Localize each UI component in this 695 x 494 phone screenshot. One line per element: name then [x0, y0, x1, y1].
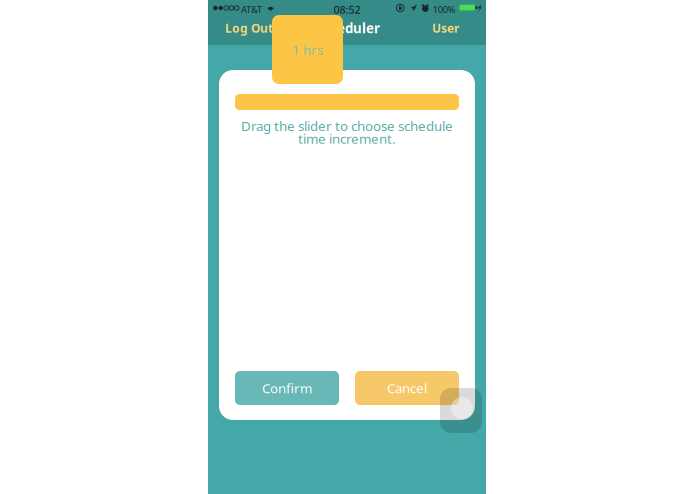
button[interactable]: Log Out — [219, 17, 279, 39]
staticText: Confirm — [262, 379, 312, 397]
staticText: time increment. — [298, 130, 396, 147]
staticText: Drag the slider to choose schedule — [241, 117, 453, 135]
staticText: Cancel — [387, 379, 427, 397]
button[interactable]: Cancel — [355, 371, 459, 405]
button[interactable]: Confirm — [235, 371, 339, 405]
button[interactable]: User — [426, 17, 465, 39]
staticText: 100% — [433, 3, 456, 15]
staticText: 1 hrs — [292, 41, 323, 58]
staticText: Scheduler — [314, 19, 380, 37]
staticText: 08:52 — [333, 3, 360, 17]
staticText: Log Out — [225, 20, 273, 36]
staticText: User — [432, 20, 459, 36]
staticText: AT&T — [241, 3, 262, 15]
